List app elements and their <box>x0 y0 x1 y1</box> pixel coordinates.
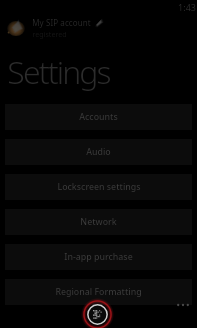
staticText: Audio <box>86 146 111 158</box>
staticText: registered <box>32 29 67 39</box>
staticText: Settings <box>7 50 110 94</box>
button[interactable]: Network <box>5 209 192 235</box>
button[interactable]: In-app purchase <box>5 244 192 270</box>
staticText: My SIP account <box>32 17 91 28</box>
button[interactable]: Lockscreen settings <box>5 174 192 200</box>
staticText: Lockscreen settings <box>57 181 141 193</box>
staticText: Network <box>80 216 117 228</box>
button[interactable]: Regional Formatting <box>5 279 192 305</box>
button[interactable]: More options <box>172 297 194 313</box>
button[interactable]: Accounts <box>5 104 192 130</box>
staticText: In-app purchase <box>64 251 133 263</box>
staticText: Accounts <box>79 111 118 123</box>
button[interactable]: Audio <box>5 139 192 165</box>
staticText: 1:43 <box>178 1 196 13</box>
staticText: Regional Formatting <box>55 286 142 298</box>
